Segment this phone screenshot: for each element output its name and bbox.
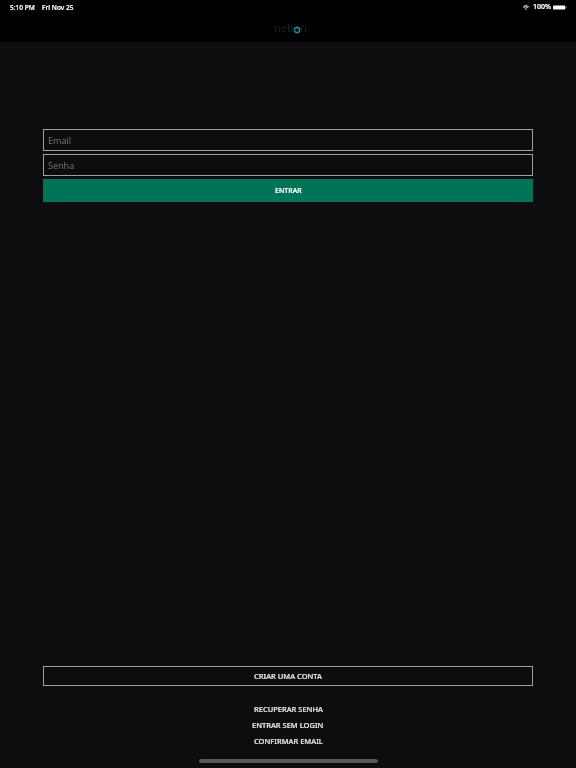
other: Battery full [553, 4, 567, 11]
staticText: CONFIRMAR EMAIL [254, 736, 323, 746]
button[interactable]: ENTRAR SEM LOGIN [0, 720, 576, 730]
staticText: Senha [48, 159, 75, 171]
button[interactable]: CRIAR UMA CONTA [43, 666, 533, 686]
button[interactable]: Email [43, 129, 533, 151]
staticText: CRIAR UMA CONTA [254, 671, 322, 681]
staticText: ENTRAR SEM LOGIN [252, 720, 324, 730]
staticText: Email [48, 134, 72, 146]
button[interactable]: CONFIRMAR EMAIL [0, 736, 576, 746]
staticText: 100% [533, 2, 551, 12]
other: Wi-Fi connected [522, 4, 530, 10]
button[interactable]: ENTRAR [43, 179, 533, 202]
staticText: 5:10 PM [10, 3, 35, 12]
staticText: neb [274, 20, 294, 35]
staticText: ENTRAR [275, 186, 302, 196]
staticText: RECUPERAR SENHA [254, 704, 323, 714]
button[interactable]: Senha [43, 154, 533, 176]
button[interactable]: RECUPERAR SENHA [0, 704, 576, 714]
staticText: Fri Nov 25 [42, 3, 74, 12]
staticText: n [300, 20, 307, 35]
